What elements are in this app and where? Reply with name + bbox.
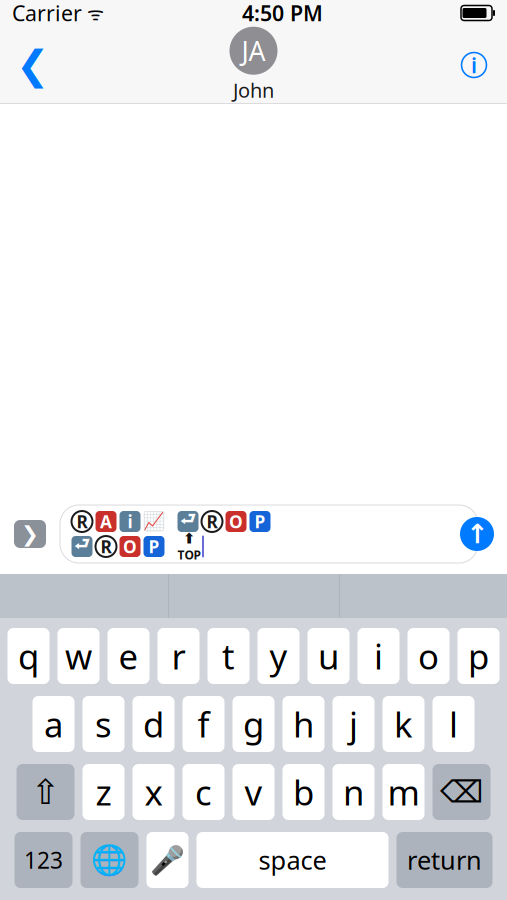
button[interactable]: j: [332, 696, 374, 752]
button[interactable]: R: [60, 505, 478, 563]
staticText: o: [418, 633, 439, 679]
button[interactable]: p: [457, 628, 499, 684]
button[interactable]: d: [132, 696, 174, 752]
button[interactable]: n: [332, 764, 374, 820]
button[interactable]: Delete: [432, 764, 490, 820]
staticText: v: [244, 769, 262, 815]
button[interactable]: s: [82, 696, 124, 752]
button[interactable]: y: [257, 628, 299, 684]
staticText: ❯: [21, 522, 39, 546]
button[interactable]: r: [157, 628, 199, 684]
staticText: return: [407, 843, 482, 877]
staticText: f: [197, 701, 209, 747]
staticText: 🎤: [150, 844, 185, 876]
staticText: ⬆: [183, 530, 195, 547]
staticText: 4:50 PM: [242, 0, 323, 27]
staticText: ↑: [466, 519, 488, 549]
button[interactable]: c: [182, 764, 224, 820]
button[interactable]: return: [396, 832, 492, 888]
staticText: h: [293, 701, 314, 747]
staticText: 🌐: [91, 843, 128, 877]
staticText: ⇧: [31, 772, 60, 812]
button[interactable]: i: [357, 628, 399, 684]
button[interactable]: Next keyboard: [80, 832, 138, 888]
button[interactable]: z: [82, 764, 124, 820]
staticText: Carrier: [12, 0, 82, 27]
staticText: A: [100, 510, 112, 533]
button[interactable]: w: [57, 628, 99, 684]
staticText: y: [269, 633, 287, 679]
staticText: ⮐: [74, 532, 90, 561]
staticText: t: [222, 633, 235, 679]
staticText: b: [293, 769, 314, 815]
staticText: i: [374, 633, 383, 679]
staticText: O: [123, 535, 137, 558]
button[interactable]: h: [282, 696, 324, 752]
button[interactable]: m: [382, 764, 424, 820]
staticText: u: [318, 633, 339, 679]
button[interactable]: Shift: [16, 764, 74, 820]
staticText: r: [171, 633, 185, 679]
staticText: R: [206, 510, 217, 533]
button[interactable]: t: [207, 628, 249, 684]
staticText: s: [95, 701, 112, 747]
staticText: e: [118, 633, 138, 679]
button[interactable]: 123: [14, 832, 72, 888]
staticText: m: [387, 769, 419, 815]
staticText: w: [65, 633, 92, 679]
button[interactable]: u: [307, 628, 349, 684]
staticText: P: [254, 510, 265, 533]
staticText: q: [18, 633, 39, 679]
staticText: R: [100, 535, 111, 558]
button[interactable]: Send: [449, 506, 505, 562]
button[interactable]: g: [232, 696, 274, 752]
staticText: c: [195, 769, 212, 815]
button[interactable]: Details: [449, 35, 499, 95]
staticText: z: [95, 769, 111, 815]
staticText: n: [343, 769, 364, 815]
button[interactable]: k: [382, 696, 424, 752]
button[interactable]: a: [32, 696, 74, 752]
staticText: p: [468, 633, 489, 679]
button[interactable]: e: [107, 628, 149, 684]
staticText: ᯤ: [82, 1, 104, 25]
button[interactable]: v: [232, 764, 274, 820]
staticText: g: [243, 701, 264, 747]
button[interactable]: b: [282, 764, 324, 820]
staticText: d: [143, 701, 164, 747]
staticText: i: [471, 51, 477, 79]
button[interactable]: f: [182, 696, 224, 752]
button[interactable]: Back: [8, 35, 58, 95]
button[interactable]: o: [407, 628, 449, 684]
button[interactable]: More apps: [0, 504, 60, 564]
button[interactable]: space: [196, 832, 388, 888]
staticText: O: [229, 510, 243, 533]
button[interactable]: x: [132, 764, 174, 820]
button[interactable]: q: [7, 628, 49, 684]
staticText: John: [233, 77, 274, 103]
staticText: ⌫: [440, 775, 483, 809]
staticText: 📈: [143, 512, 165, 531]
staticText: TOP: [177, 547, 200, 563]
staticText: l: [449, 701, 458, 747]
staticText: a: [44, 701, 63, 747]
staticText: k: [394, 701, 413, 747]
staticText: ❮: [16, 42, 50, 88]
staticText: P: [148, 535, 159, 558]
staticText: 123: [24, 845, 63, 875]
button[interactable]: Dictate: [146, 832, 188, 888]
staticText: i: [127, 510, 132, 533]
button[interactable]: l: [432, 696, 474, 752]
staticText: space: [258, 843, 326, 877]
staticText: x: [144, 769, 162, 815]
staticText: JA: [241, 33, 265, 68]
staticText: ⮐: [180, 507, 196, 536]
staticText: j: [349, 701, 358, 747]
staticText: R: [76, 510, 87, 533]
